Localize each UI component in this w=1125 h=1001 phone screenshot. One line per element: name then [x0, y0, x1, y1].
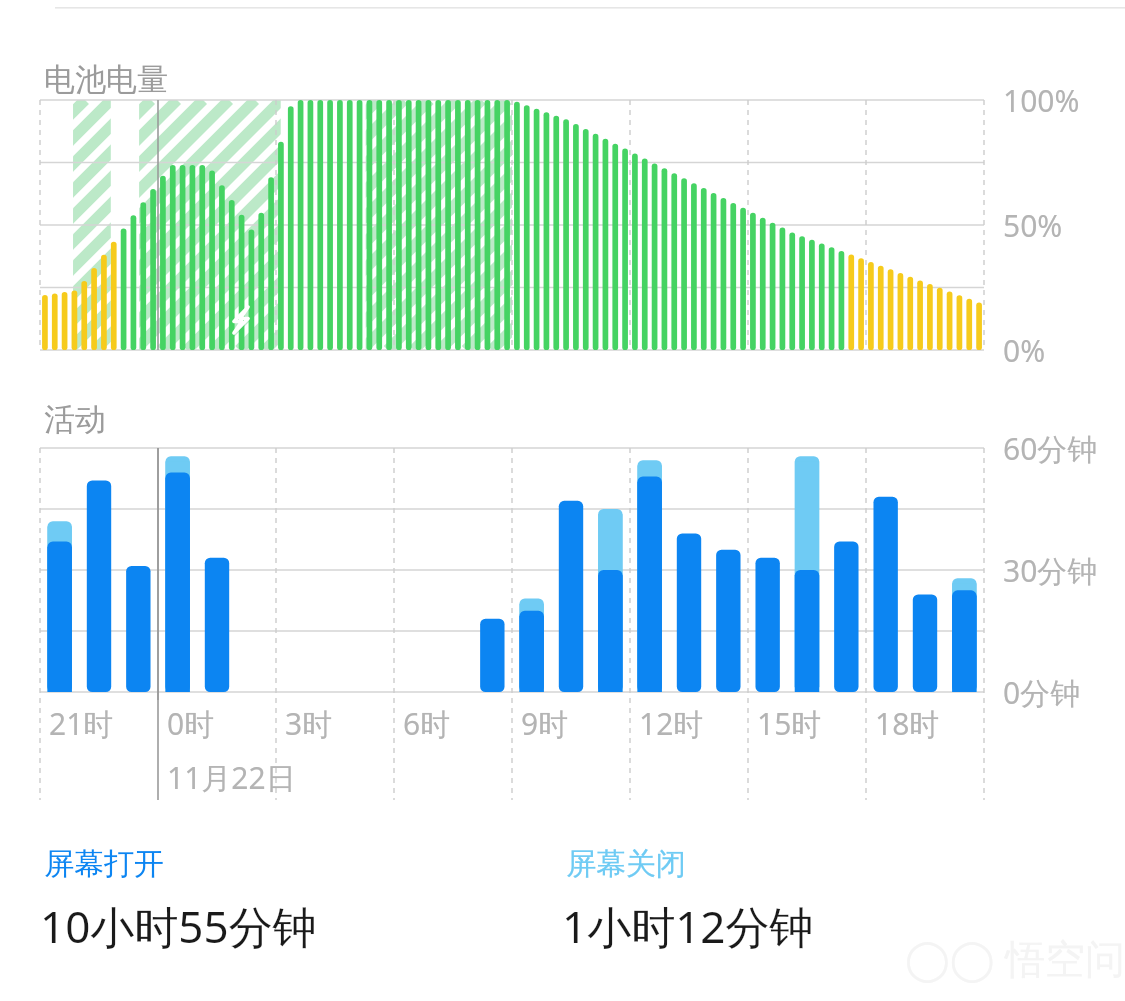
button[interactable]: Battery and activity usage chart [0, 0, 1125, 1001]
